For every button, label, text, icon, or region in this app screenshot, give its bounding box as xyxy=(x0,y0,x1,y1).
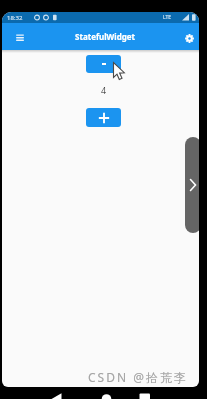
button[interactable] xyxy=(12,29,28,45)
staticText: StatefulWidget xyxy=(75,31,136,42)
button[interactable] xyxy=(185,137,201,233)
button[interactable] xyxy=(86,108,121,127)
button[interactable] xyxy=(182,31,196,45)
staticText: 4 xyxy=(101,84,107,96)
staticText: CSDN @拾荒李 xyxy=(88,369,188,385)
button[interactable] xyxy=(86,55,121,73)
staticText: LTE xyxy=(163,14,172,21)
staticText: 18:32 xyxy=(7,14,23,22)
